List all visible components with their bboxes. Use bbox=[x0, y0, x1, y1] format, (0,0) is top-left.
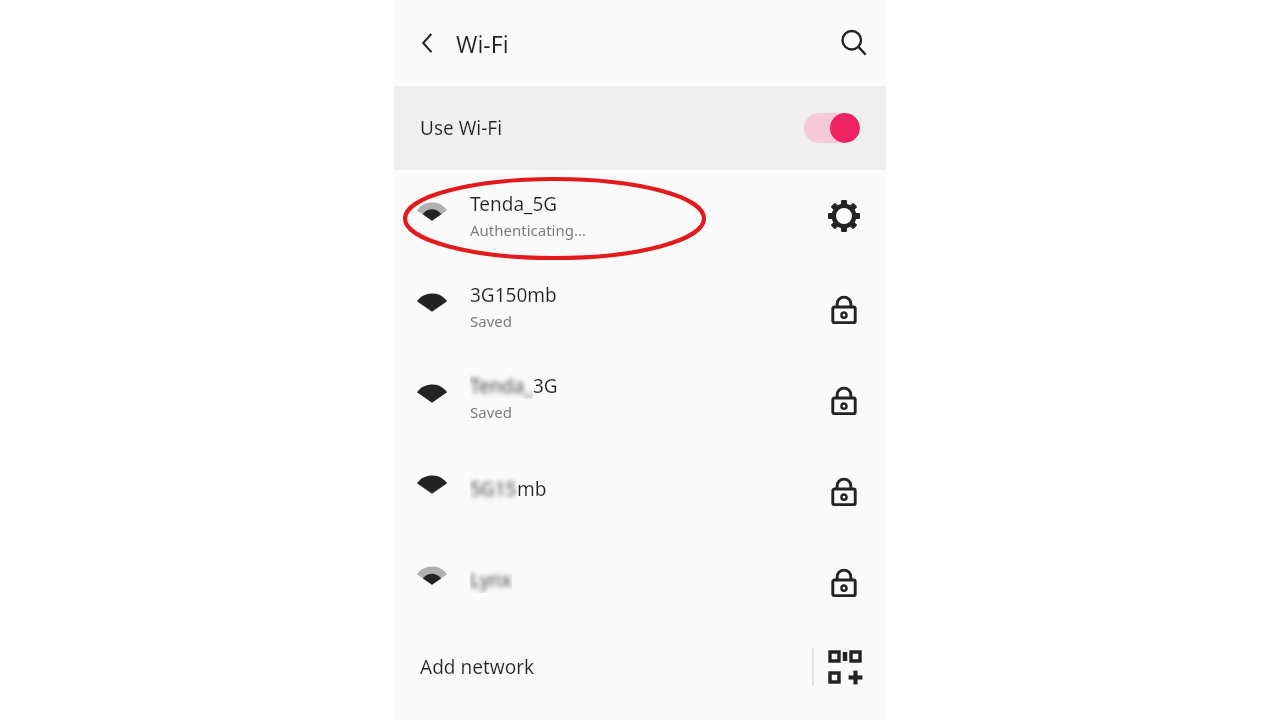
staticText: 3G bbox=[533, 373, 558, 399]
button[interactable]: Tenda_5G bbox=[394, 170, 886, 261]
staticText: 3G150mb bbox=[470, 282, 557, 308]
button[interactable]: Secured network bbox=[812, 366, 876, 430]
button[interactable]: Network settings bbox=[812, 184, 876, 248]
button[interactable]: Back bbox=[400, 15, 456, 71]
button[interactable]: 3G150mb bbox=[394, 261, 886, 352]
button[interactable]: Scan QR code bbox=[814, 636, 876, 698]
button[interactable]: Secured network bbox=[812, 548, 876, 612]
staticText: Saved bbox=[470, 402, 512, 422]
staticText: Add network bbox=[420, 654, 535, 680]
button[interactable]: Tenda_ bbox=[394, 352, 886, 443]
staticText: Tenda_ bbox=[470, 373, 533, 399]
staticText: Tenda_5G bbox=[470, 191, 558, 217]
button[interactable]: Secured network bbox=[812, 275, 876, 339]
button[interactable]: Secured network bbox=[812, 457, 876, 521]
button[interactable]: 5G15 bbox=[394, 443, 886, 534]
staticText: Wi-Fi bbox=[456, 28, 509, 59]
staticText: Saved bbox=[470, 311, 512, 331]
button[interactable]: Use Wi-Fi bbox=[394, 86, 886, 170]
staticText: 5G15 bbox=[470, 476, 517, 502]
button[interactable]: Add network bbox=[394, 625, 886, 709]
button[interactable]: Search bbox=[824, 13, 884, 73]
staticText: mb bbox=[517, 476, 547, 502]
button[interactable]: Lynx bbox=[394, 534, 886, 625]
staticText: Use Wi-Fi bbox=[420, 115, 503, 141]
staticText: Authenticating… bbox=[470, 220, 586, 240]
staticText: Lynx bbox=[470, 567, 512, 593]
